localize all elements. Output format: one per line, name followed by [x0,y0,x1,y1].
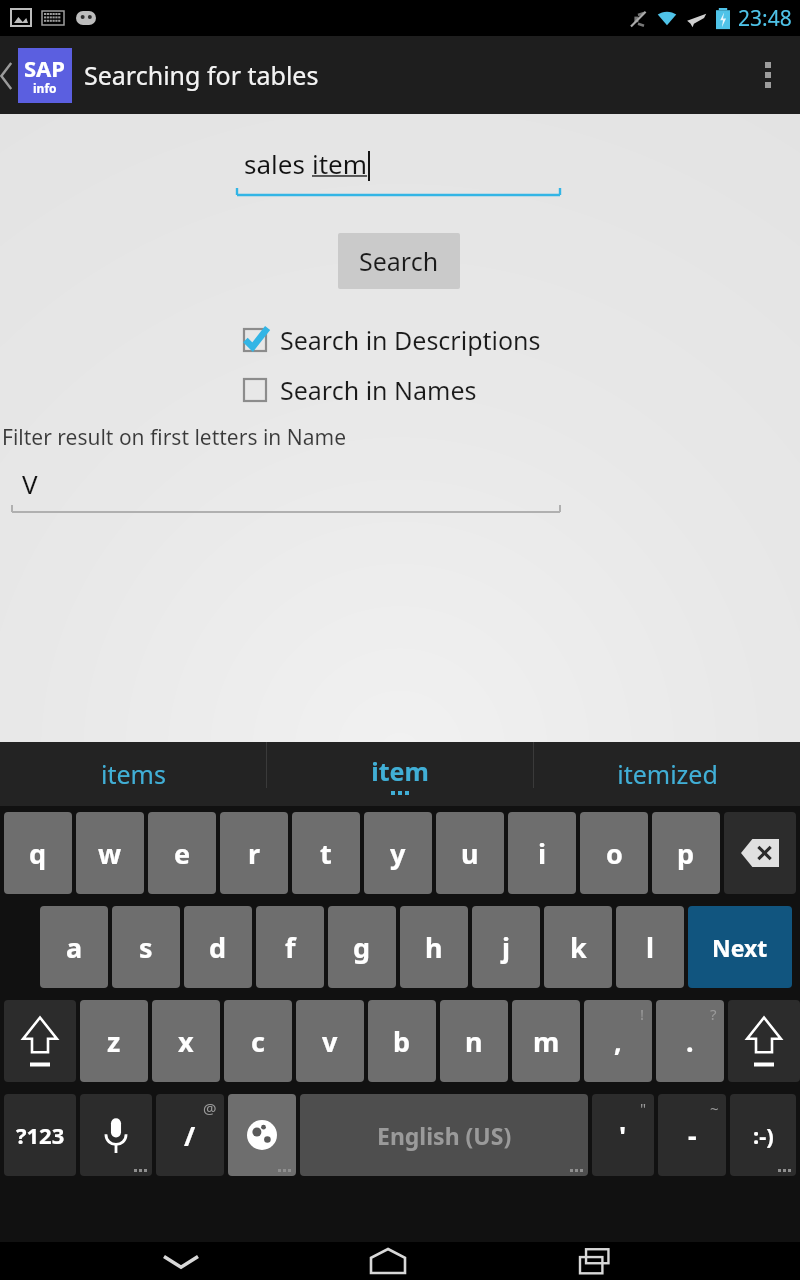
button[interactable]: English (US) [300,1094,588,1176]
button[interactable]: itemized [534,742,800,806]
staticText: Filter result on first letters in Name [2,423,346,452]
button[interactable]: Home [343,1242,433,1280]
staticText: sales [244,146,312,181]
staticText: V [22,466,38,501]
staticText: Search in Names [280,373,477,407]
button[interactable]: o [580,812,648,894]
staticText: - [688,1117,697,1154]
staticText: ~ [710,1098,719,1118]
staticText: item [312,146,368,181]
button[interactable]: l [616,906,684,988]
button[interactable]: s [112,906,180,988]
button[interactable]: Key [724,812,796,894]
button[interactable]: h [400,906,468,988]
button[interactable]: items [0,742,266,806]
button[interactable]: b [368,1000,436,1082]
button[interactable]: x [152,1000,220,1082]
button[interactable]: g [328,906,396,988]
button[interactable]: More options [736,36,800,114]
button[interactable]: Key [728,1000,800,1082]
staticText: info [33,80,57,96]
button[interactable]: e [148,812,216,894]
staticText: item [371,754,429,788]
button[interactable]: item [267,742,533,806]
button[interactable]: k [544,906,612,988]
staticText: items [101,757,166,791]
staticText: u [461,835,479,872]
staticText: . [686,1023,694,1060]
button[interactable]: Next [688,906,792,988]
staticText: l [646,929,655,966]
button[interactable]: Hide keyboard [136,1242,226,1280]
staticText: 23:48 [738,4,792,33]
button[interactable]: r [220,812,288,894]
staticText: i [538,835,547,872]
staticText: / [184,1117,196,1154]
button[interactable]: Search in Names [240,373,477,407]
button[interactable]: Key [80,1094,152,1176]
button[interactable]: f [256,906,324,988]
staticText: p [677,835,695,872]
staticText: g [353,929,371,966]
staticText: ' [619,1117,627,1154]
button[interactable]: w [76,812,144,894]
button[interactable]: Search in Descriptions [240,323,541,357]
button[interactable] [0,507,800,519]
button[interactable]: p [652,812,720,894]
staticText: b [393,1023,411,1060]
button[interactable]: i [508,812,576,894]
button[interactable]: ' [592,1094,654,1176]
button[interactable]: n [440,1000,508,1082]
staticText: k [570,929,587,966]
staticText: z [107,1023,121,1060]
staticText: j [502,929,511,966]
staticText: m [533,1023,560,1060]
button[interactable]: ?123 [4,1094,76,1176]
button[interactable]: Search [338,233,460,289]
staticText: ?123 [16,1120,65,1150]
button[interactable]: a [40,906,108,988]
staticText: r [248,835,261,872]
button[interactable]: y [364,812,432,894]
staticText: English (US) [377,1120,512,1151]
staticText: q [29,835,47,872]
staticText: h [425,929,443,966]
staticText: " [640,1098,647,1118]
button[interactable]: t [292,812,360,894]
staticText: @ [203,1098,217,1118]
button[interactable]: Key [228,1094,296,1176]
button[interactable]: Navigate up [0,36,72,114]
button[interactable]: . [656,1000,724,1082]
button[interactable]: c [224,1000,292,1082]
button[interactable]: u [436,812,504,894]
button[interactable]: - [658,1094,726,1176]
button[interactable]: z [80,1000,148,1082]
staticText: Searching for tables [84,58,319,92]
button[interactable]: :-) [730,1094,796,1176]
staticText: v [322,1023,338,1060]
button[interactable] [0,189,800,201]
button[interactable]: Key [4,1000,76,1082]
staticText: ! [640,1004,645,1024]
button[interactable]: q [4,812,72,894]
button[interactable]: d [184,906,252,988]
staticText: x [178,1023,194,1060]
staticText: n [465,1023,483,1060]
button[interactable]: , [584,1000,652,1082]
staticText: a [66,929,83,966]
staticText: ? [710,1004,717,1024]
button[interactable]: / [156,1094,224,1176]
staticText: Search [359,244,439,278]
staticText: SAP [24,53,66,83]
button[interactable]: Recent apps [550,1242,640,1280]
staticText: o [606,835,623,872]
staticText: c [251,1023,265,1060]
staticText: w [98,835,122,872]
staticText: Next [712,932,768,963]
button[interactable]: v [296,1000,364,1082]
button[interactable]: j [472,906,540,988]
button[interactable]: m [512,1000,580,1082]
staticText: Search in Descriptions [280,323,541,357]
staticText: f [285,929,296,966]
staticText: , [614,1023,622,1060]
